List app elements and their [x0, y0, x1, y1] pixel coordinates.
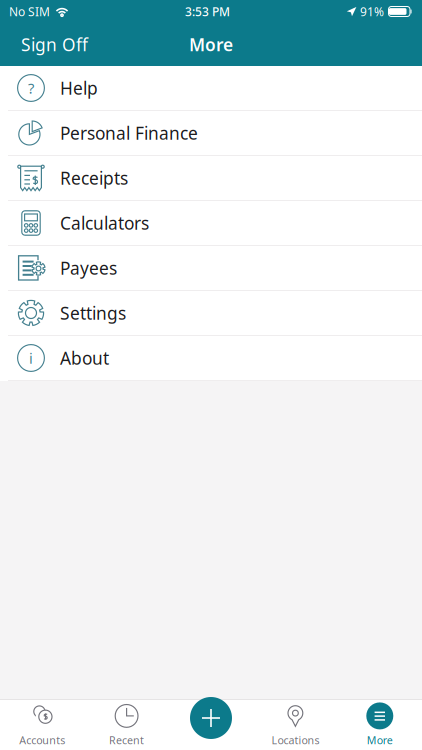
button[interactable]: Accounts: [0, 697, 84, 750]
staticText: Payees: [60, 256, 117, 279]
staticText: [209, 733, 212, 747]
button[interactable]: Calculators: [0, 201, 422, 246]
staticText: i: [29, 348, 33, 368]
button[interactable]: Personal Finance: [0, 111, 422, 156]
staticText: Accounts: [19, 733, 65, 747]
staticText: More: [367, 733, 393, 747]
staticText: Locations: [271, 733, 319, 747]
staticText: More: [189, 33, 233, 56]
button[interactable]: Add: [190, 697, 232, 739]
staticText: Receipts: [60, 166, 128, 189]
button[interactable]: More: [338, 697, 422, 750]
staticText: Settings: [60, 301, 126, 324]
staticText: 3:53 PM: [185, 3, 230, 19]
button[interactable]: Payees: [0, 246, 422, 291]
staticText: Personal Finance: [60, 121, 198, 144]
button[interactable]: Sign Off: [0, 23, 100, 66]
staticText: About: [60, 346, 109, 369]
button[interactable]: ?: [0, 66, 422, 111]
staticText: No SIM: [9, 3, 50, 19]
button[interactable]: Settings: [0, 291, 422, 336]
button[interactable]: [169, 697, 253, 750]
staticText: ?: [28, 78, 34, 98]
staticText: Sign Off: [21, 33, 88, 56]
button[interactable]: i: [0, 336, 422, 381]
button[interactable]: Receipts: [0, 156, 422, 201]
staticText: Calculators: [60, 211, 149, 234]
staticText: Recent: [109, 733, 144, 747]
button[interactable]: Locations: [253, 697, 338, 750]
button[interactable]: Recent: [84, 697, 169, 750]
staticText: 91%: [360, 3, 384, 19]
staticText: Help: [60, 76, 98, 99]
